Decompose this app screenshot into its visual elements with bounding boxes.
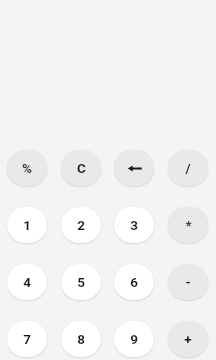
staticText: 2 [77, 217, 85, 233]
staticText: * [185, 217, 192, 233]
staticText: 3 [130, 217, 138, 233]
staticText: 4 [23, 274, 31, 290]
staticText: C [77, 160, 86, 176]
staticText: + [184, 331, 192, 347]
button[interactable]: 1 [7, 207, 47, 243]
staticText: - [185, 274, 191, 290]
button[interactable]: 5 [61, 264, 101, 300]
button[interactable]: / [168, 150, 208, 186]
staticText: 1 [23, 217, 31, 233]
button[interactable]: 2 [61, 207, 101, 243]
button[interactable]: 9 [114, 321, 154, 357]
staticText: / [185, 160, 191, 176]
button[interactable]: + [168, 321, 208, 357]
staticText: 5 [77, 274, 85, 290]
button[interactable]: 4 [7, 264, 47, 300]
button[interactable]: Backspace [114, 150, 154, 186]
staticText: 9 [130, 331, 138, 347]
button[interactable]: % [7, 150, 47, 186]
button[interactable]: 6 [114, 264, 154, 300]
staticText: % [22, 160, 32, 176]
staticText: 7 [23, 331, 31, 347]
button[interactable]: 8 [61, 321, 101, 357]
staticText: 8 [77, 331, 85, 347]
button[interactable]: 3 [114, 207, 154, 243]
staticText: 6 [130, 274, 138, 290]
button[interactable]: C [61, 150, 101, 186]
button[interactable]: 7 [7, 321, 47, 357]
button[interactable]: * [168, 207, 208, 243]
button[interactable]: - [168, 264, 208, 300]
